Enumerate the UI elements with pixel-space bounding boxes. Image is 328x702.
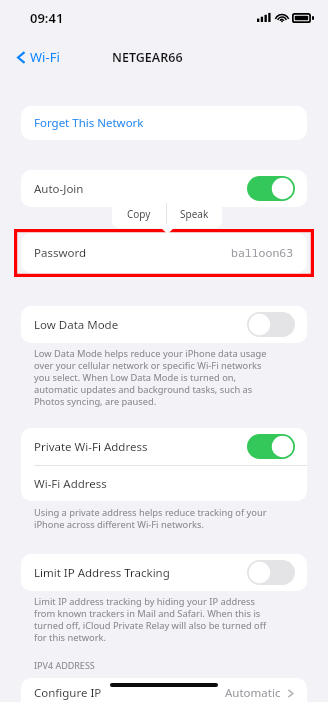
- button[interactable]: Limit IP Address Tracking: [21, 554, 307, 591]
- button[interactable]: Speak: [167, 199, 222, 228]
- button[interactable]: Private Wi-Fi Address toggle, on: [247, 434, 295, 459]
- button[interactable]: Limit IP Address Tracking toggle, off: [247, 560, 295, 585]
- staticText: Using a private address helps reduce tra…: [34, 506, 267, 518]
- staticText: Photos syncing, are paused.: [34, 395, 157, 407]
- staticText: Wi-Fi: [30, 48, 60, 66]
- staticText: Low Data Mode helps reduce your iPhone d…: [34, 347, 267, 359]
- staticText: you select. When Low Data Mode is turned…: [34, 371, 237, 383]
- button[interactable]: Private Wi-Fi Address: [21, 428, 307, 465]
- button[interactable]: Auto-Join: [21, 170, 307, 207]
- staticText: IPV4 ADDRESS: [34, 659, 95, 671]
- staticText: 09:41: [30, 9, 64, 27]
- staticText: Private Wi-Fi Address: [34, 439, 148, 455]
- button[interactable]: Low Data Mode toggle, off: [247, 312, 295, 337]
- staticText: iPhone across different Wi-Fi networks.: [34, 518, 204, 530]
- staticText: Copy: [127, 207, 151, 221]
- staticText: automatic updates and background tasks, …: [34, 383, 253, 395]
- staticText: from known trackers in Mail and Safari. …: [34, 607, 261, 619]
- button[interactable]: Forget This Network: [21, 106, 307, 140]
- staticText: Automatic: [225, 685, 281, 701]
- button[interactable]: Configure IP: [21, 678, 307, 702]
- staticText: for this network.: [34, 631, 107, 643]
- staticText: Limit IP Address Tracking: [34, 565, 170, 581]
- button[interactable]: Wi-Fi Address: [21, 466, 307, 501]
- staticText: Forget This Network: [34, 115, 144, 131]
- staticText: Wi-Fi Address: [34, 476, 107, 492]
- staticText: Limit IP address tracking by hiding your…: [34, 595, 255, 607]
- button[interactable]: Wi-Fi: [13, 42, 64, 72]
- staticText: turned off, iCloud Private Relay will al…: [34, 619, 267, 631]
- staticText: NETGEAR66: [112, 49, 183, 66]
- staticText: Speak: [180, 207, 209, 221]
- button[interactable]: Password: [21, 233, 307, 273]
- staticText: Auto-Join: [34, 181, 84, 197]
- button[interactable]: Copy: [112, 199, 166, 228]
- staticText: Password: [34, 245, 87, 261]
- staticText: over your cellular network or specific W…: [34, 359, 262, 371]
- button[interactable]: Low Data Mode: [21, 306, 307, 343]
- staticText: Low Data Mode: [34, 317, 119, 333]
- staticText: Configure IP: [34, 685, 102, 701]
- staticText: balloon63: [231, 245, 294, 261]
- button[interactable]: Auto-Join toggle, on: [247, 176, 295, 201]
